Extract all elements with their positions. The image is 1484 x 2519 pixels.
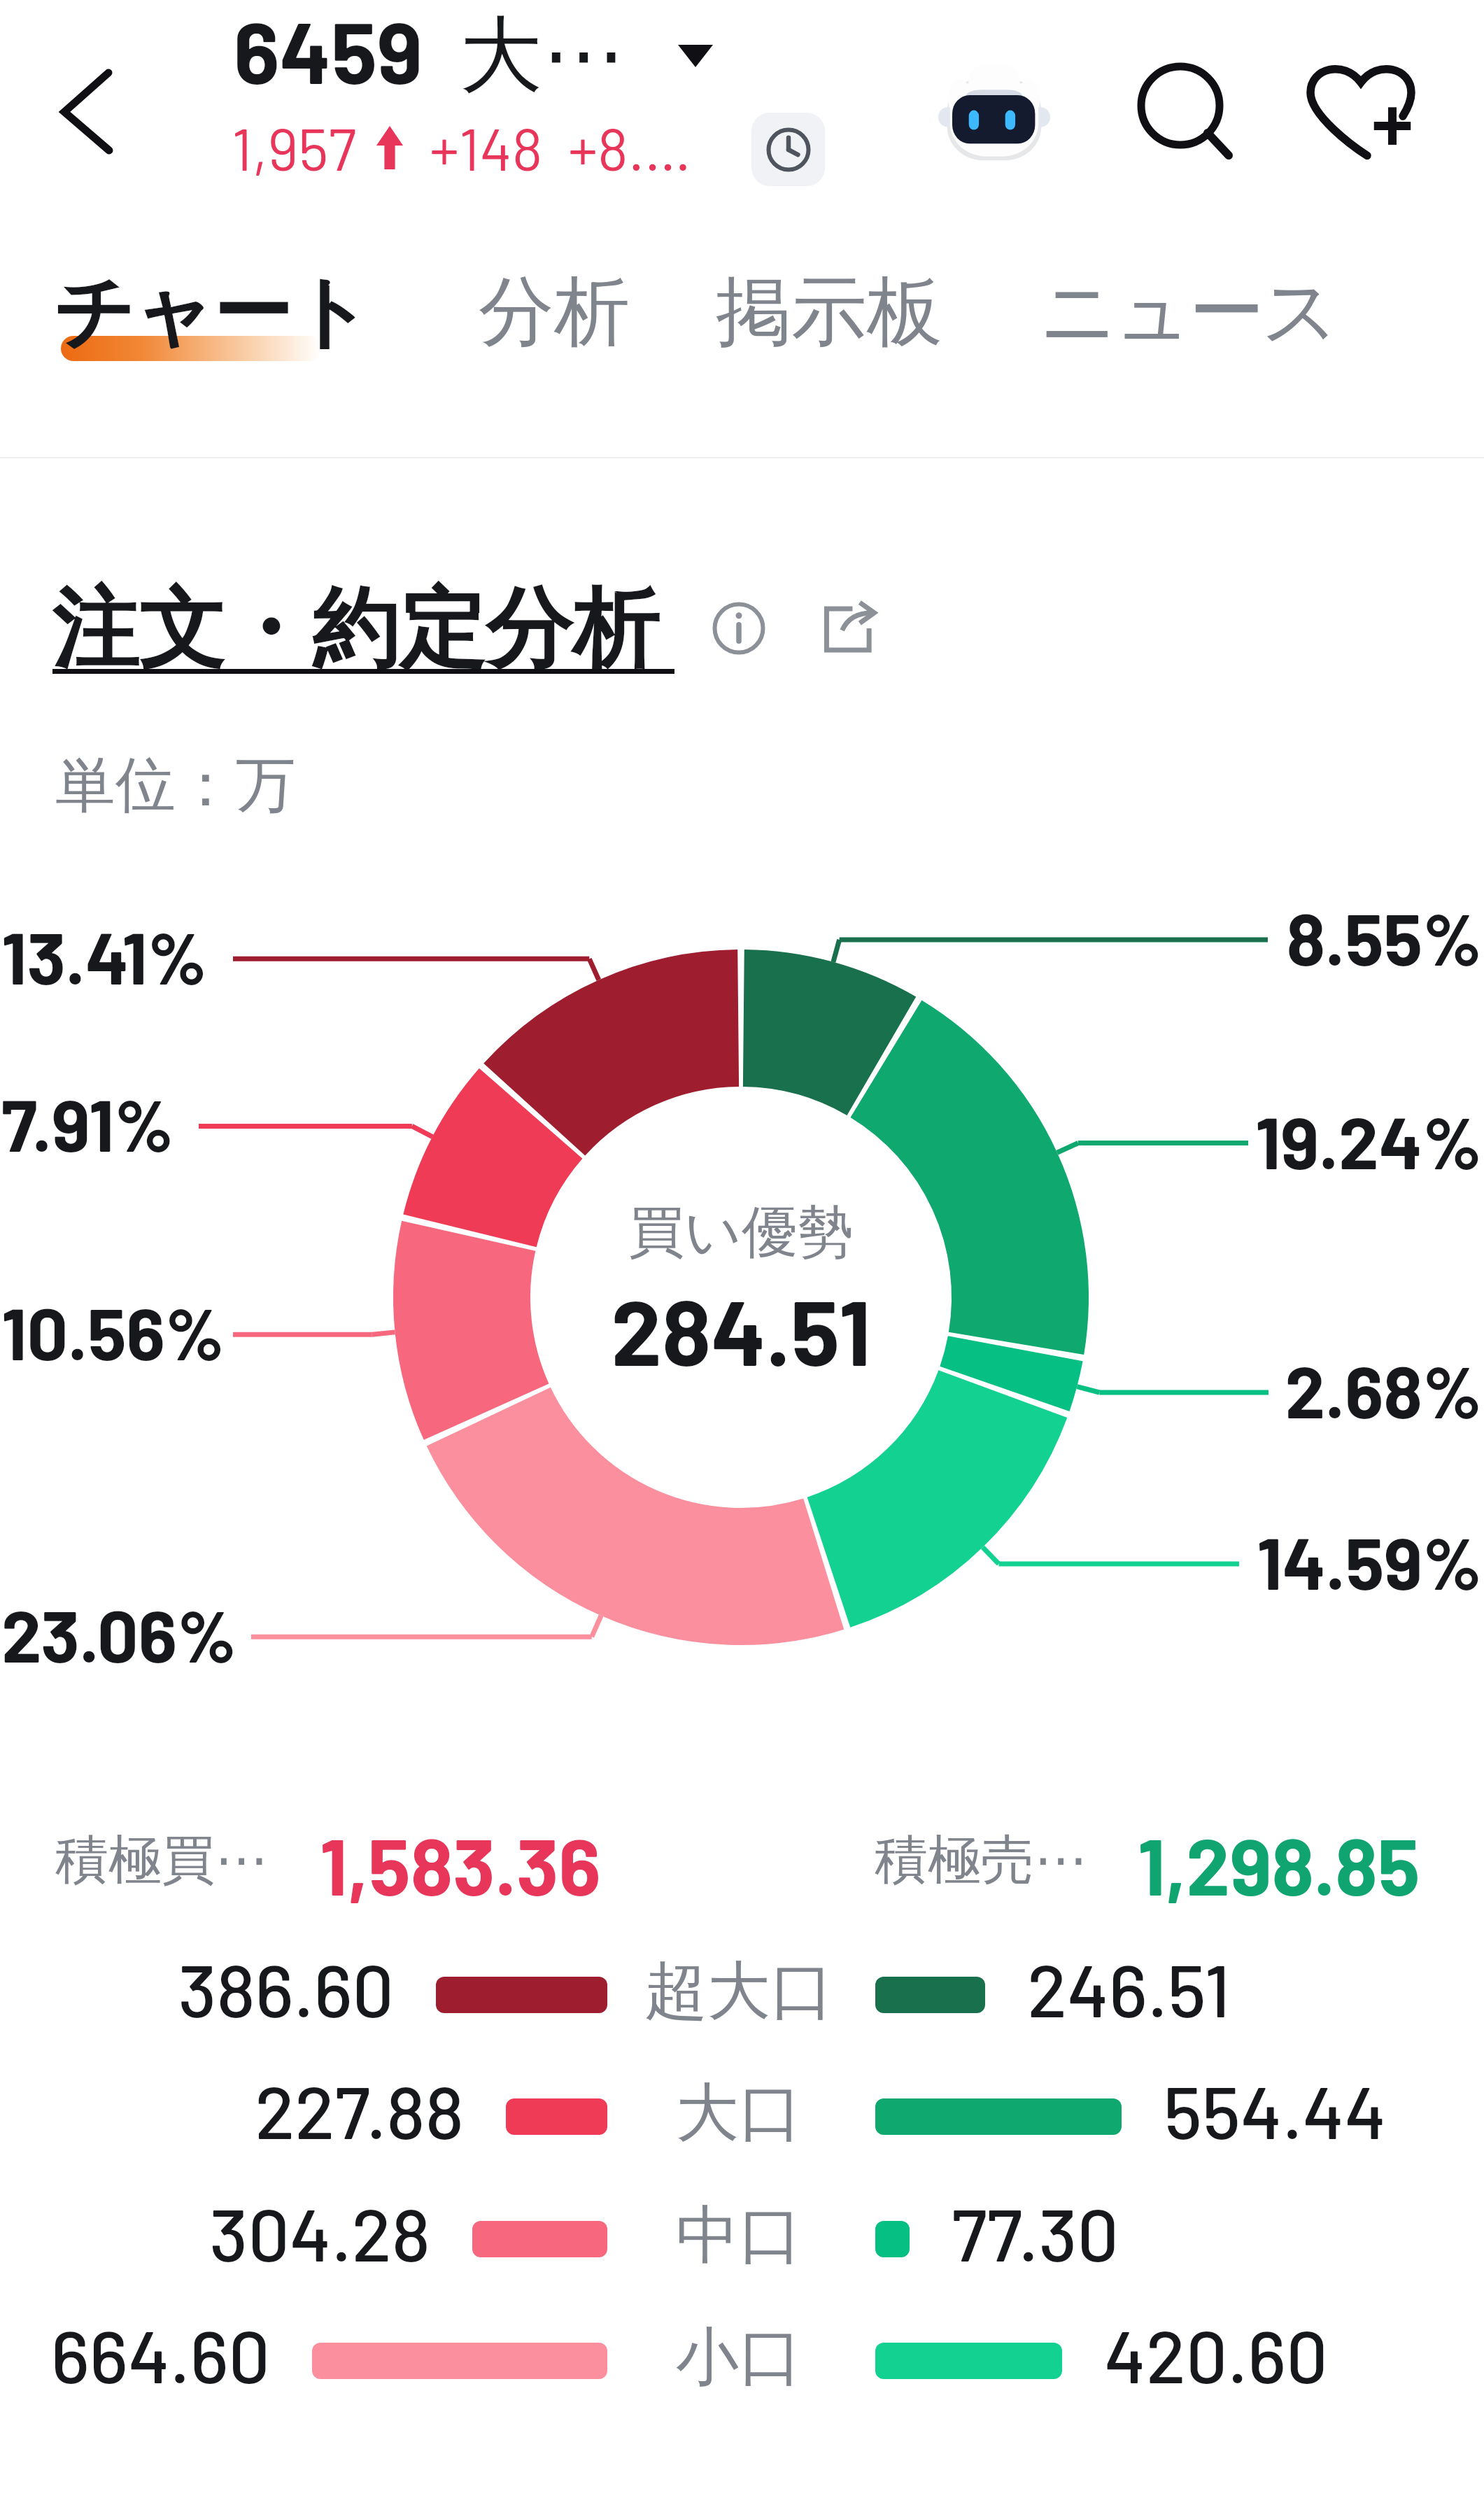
staticText: 分析 [479, 264, 630, 360]
button[interactable]: Add to watchlist [1291, 41, 1431, 181]
button[interactable]: 分析 [479, 264, 630, 360]
staticText: 大口 [676, 2073, 802, 2152]
staticText: 246.51 [1027, 1944, 1231, 2032]
staticText: 420.60 [1104, 2310, 1328, 2398]
button[interactable]: AI assistant [931, 48, 1058, 175]
staticText: 6459 [234, 0, 423, 101]
button[interactable]: Search [1119, 41, 1252, 174]
button[interactable]: Back [28, 42, 168, 182]
button[interactable]: 掲示板 [716, 264, 942, 360]
staticText: 19.24% [1255, 1097, 1482, 1184]
button[interactable]: チャート [54, 263, 370, 362]
staticText: 284.51 [611, 1275, 871, 1384]
button[interactable]: 注文・約定分析 [52, 575, 659, 684]
button[interactable]: Trading session [751, 113, 825, 186]
staticText: 買い優勢 [628, 1197, 854, 1268]
staticText: 7.91% [1, 1080, 174, 1166]
staticText: 8.55% [1286, 894, 1482, 980]
staticText: 2.68% [1285, 1346, 1482, 1433]
staticText: 積極買⋯ [55, 1827, 268, 1894]
staticText: 中口 [676, 2196, 802, 2275]
staticText: 注文・約定分析 [52, 575, 659, 684]
button[interactable]: Share [807, 586, 891, 670]
staticText: 304.28 [209, 2188, 430, 2276]
button[interactable]: 6459 [210, 0, 742, 98]
staticText: 1,957 [232, 112, 357, 183]
staticText: 23.06% [1, 1590, 236, 1677]
staticText: 664.60 [51, 2310, 270, 2398]
staticText: 小口 [676, 2317, 802, 2397]
staticText: 14.59% [1257, 1518, 1482, 1604]
staticText: ニュース [1040, 264, 1336, 360]
staticText: 13.41% [1, 912, 207, 999]
staticText: 10.56% [1, 1288, 225, 1375]
staticText: 1,583.36 [320, 1817, 601, 1911]
staticText: 大⋯ [460, 3, 625, 108]
staticText: 227.88 [255, 2066, 464, 2154]
staticText: 1,298.85 [1138, 1817, 1420, 1911]
button[interactable]: Info [697, 586, 781, 670]
staticText: 77.30 [952, 2188, 1119, 2276]
staticText: 554.44 [1164, 2066, 1387, 2154]
button[interactable]: ニュース [1040, 264, 1336, 360]
staticText: +148 [430, 112, 543, 183]
staticText: 掲示板 [716, 264, 942, 360]
staticText: 積極売⋯ [875, 1827, 1087, 1894]
staticText: +8.… [568, 112, 691, 183]
staticText: 超大口 [644, 1952, 833, 2031]
staticText: チャート [54, 263, 370, 362]
staticText: 386.60 [178, 1944, 394, 2032]
staticText: 単位：万 [55, 747, 296, 823]
